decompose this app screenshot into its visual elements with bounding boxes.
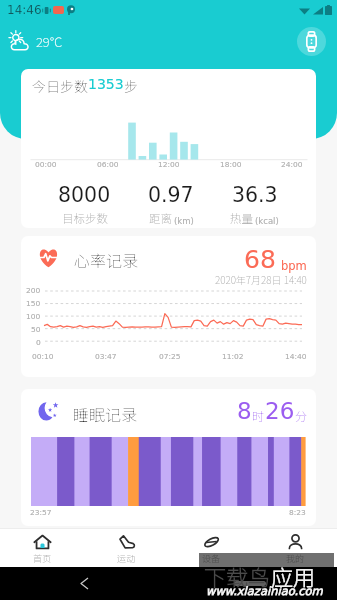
- staticText: 07:25: [159, 352, 181, 361]
- staticText: 150: [26, 299, 41, 308]
- staticText: (km): [174, 216, 194, 226]
- button[interactable]: 我的: [253, 528, 337, 567]
- staticText: 距离: [149, 210, 172, 227]
- staticText: 8: [237, 398, 252, 425]
- button[interactable]: 首页: [0, 528, 84, 567]
- staticText: 36.3: [232, 183, 278, 207]
- staticText: 8:23: [289, 508, 306, 517]
- staticText: 14:46: [7, 3, 42, 17]
- staticText: 下载鸟: [204, 560, 271, 592]
- staticText: 11:02: [222, 352, 244, 361]
- staticText: 1353: [88, 76, 124, 92]
- button[interactable]: 今日步数: [21, 69, 316, 228]
- staticText: 23:57: [30, 508, 52, 517]
- staticText: 200: [26, 286, 41, 295]
- staticText: 00:10: [32, 352, 54, 361]
- staticText: 目标步数: [62, 210, 108, 227]
- staticText: 运动: [117, 552, 136, 565]
- staticText: 0.97: [148, 183, 194, 207]
- staticText: 50: [31, 325, 41, 334]
- staticText: 12:00: [158, 160, 180, 169]
- staticText: www.xlazainiao.com: [206, 584, 323, 597]
- button[interactable]: 运动: [84, 528, 168, 567]
- staticText: 我的: [286, 552, 305, 565]
- staticText: 14:40: [285, 352, 307, 361]
- staticText: 应用: [271, 560, 316, 592]
- button[interactable]: 睡眠记录: [21, 389, 316, 526]
- staticText: (kcal): [255, 216, 279, 226]
- staticText: 今日步数: [32, 76, 88, 96]
- staticText: 100: [26, 312, 41, 321]
- button[interactable]: 心率记录: [21, 236, 316, 377]
- staticText: 68: [244, 245, 276, 274]
- staticText: 分: [295, 407, 308, 424]
- staticText: 步: [124, 76, 138, 96]
- staticText: 睡眠记录: [73, 402, 138, 425]
- other: Back: [81, 578, 88, 589]
- staticText: 29℃: [36, 32, 63, 51]
- staticText: 8000: [58, 183, 111, 207]
- staticText: 设备: [202, 552, 221, 565]
- staticText: 心率记录: [74, 248, 139, 271]
- staticText: 03:47: [95, 352, 117, 361]
- staticText: 06:00: [97, 160, 119, 169]
- staticText: 时: [252, 407, 265, 424]
- staticText: 首页: [33, 552, 52, 565]
- staticText: 0: [36, 338, 41, 347]
- button[interactable]: My device: [297, 27, 326, 56]
- staticText: 18:00: [220, 160, 242, 169]
- staticText: 24:00: [281, 160, 303, 169]
- staticText: 2020年7月28日 14:40: [215, 272, 307, 286]
- other: Home: [234, 581, 266, 586]
- staticText: 00:00: [35, 160, 57, 169]
- button[interactable]: 设备: [169, 528, 253, 567]
- staticText: bpm: [281, 259, 307, 272]
- staticText: 热量: [230, 210, 253, 227]
- staticText: 26: [265, 398, 295, 425]
